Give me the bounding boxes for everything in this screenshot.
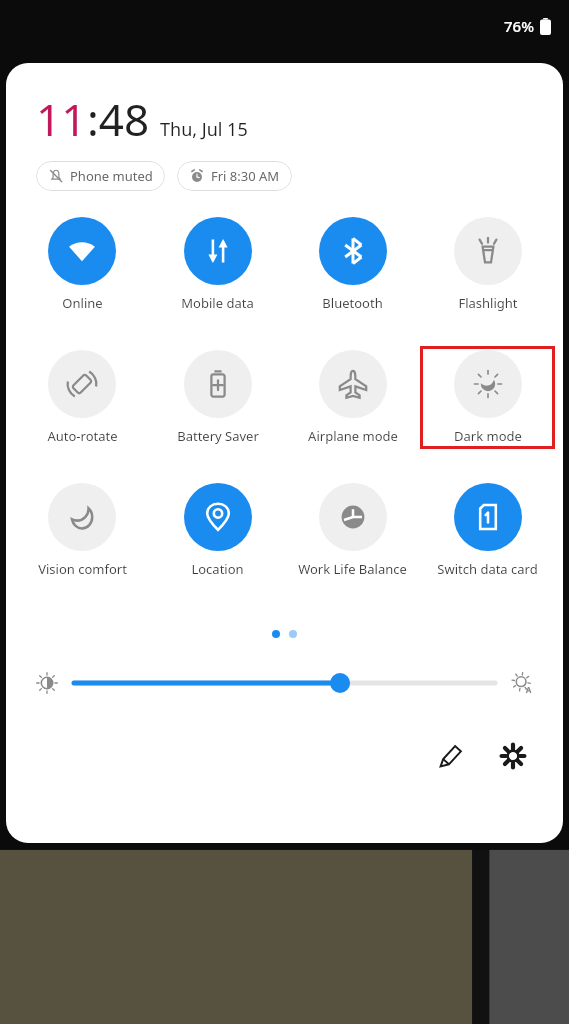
staticText: Auto-rotate (47, 427, 118, 445)
button[interactable]: Mobile data (150, 217, 285, 312)
button[interactable]: Flashlight (420, 217, 555, 312)
staticText: Flashlight (458, 294, 518, 312)
button[interactable]: Battery Saver (150, 350, 285, 445)
staticText: Location (191, 560, 244, 578)
button[interactable]: Fri 8:30 AM (177, 161, 292, 191)
staticText: Online (62, 294, 103, 312)
button[interactable]: Edit (429, 734, 473, 778)
button[interactable]: Phone muted (36, 161, 165, 191)
button[interactable]: Auto-rotate (14, 350, 150, 445)
staticText: Switch data card (437, 560, 538, 578)
staticText: Battery Saver (177, 427, 259, 445)
button[interactable] (74, 666, 495, 700)
staticText: Thu, Jul 15 (160, 117, 248, 142)
button[interactable]: Location (150, 483, 285, 578)
staticText: Fri 8:30 AM (211, 167, 280, 185)
button[interactable]: Work Life Balance (285, 483, 420, 578)
staticText: Vision comfort (38, 560, 127, 578)
staticText: :48 (87, 89, 150, 149)
staticText: Bluetooth (322, 294, 383, 312)
button[interactable]: Settings (491, 734, 535, 778)
button[interactable]: Switch data card (420, 483, 555, 578)
staticText: Airplane mode (308, 427, 398, 445)
staticText: 76% (504, 16, 534, 36)
button[interactable]: Airplane mode (285, 350, 420, 445)
staticText: Work Life Balance (298, 560, 407, 578)
staticText: Dark mode (454, 427, 522, 445)
staticText: Phone muted (70, 167, 153, 185)
button[interactable]: Auto brightness (505, 666, 539, 700)
staticText: 11 (36, 89, 87, 149)
button[interactable]: Dark mode (420, 350, 555, 445)
button[interactable]: Vision comfort (14, 483, 150, 578)
button[interactable]: Bluetooth (285, 217, 420, 312)
button[interactable]: Low brightness (30, 666, 64, 700)
staticText: Mobile data (181, 294, 254, 312)
button[interactable]: Online (14, 217, 150, 312)
